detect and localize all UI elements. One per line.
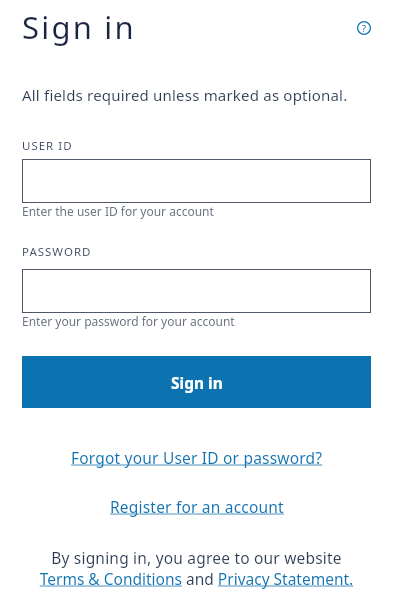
button[interactable] xyxy=(22,269,371,313)
button[interactable]: Sign in xyxy=(22,356,371,408)
staticText: All fields required unless marked as opt… xyxy=(22,85,348,105)
staticText: Sign in xyxy=(22,6,136,48)
button[interactable]: Forgot your User ID or password? xyxy=(71,447,323,468)
staticText: Enter your password for your account xyxy=(22,313,235,329)
button[interactable]: ? xyxy=(357,21,371,35)
button[interactable]: Terms & Conditions and Privacy Statement… xyxy=(22,568,371,589)
button[interactable]: Register for an account xyxy=(110,496,284,517)
staticText: Sign in xyxy=(171,372,223,393)
staticText: ? xyxy=(362,22,367,34)
staticText: USER ID xyxy=(22,138,73,154)
staticText: PASSWORD xyxy=(22,244,92,260)
staticText: Enter the user ID for your account xyxy=(22,203,214,219)
button[interactable] xyxy=(22,159,371,203)
staticText: By signing in, you agree to our website xyxy=(22,547,371,568)
